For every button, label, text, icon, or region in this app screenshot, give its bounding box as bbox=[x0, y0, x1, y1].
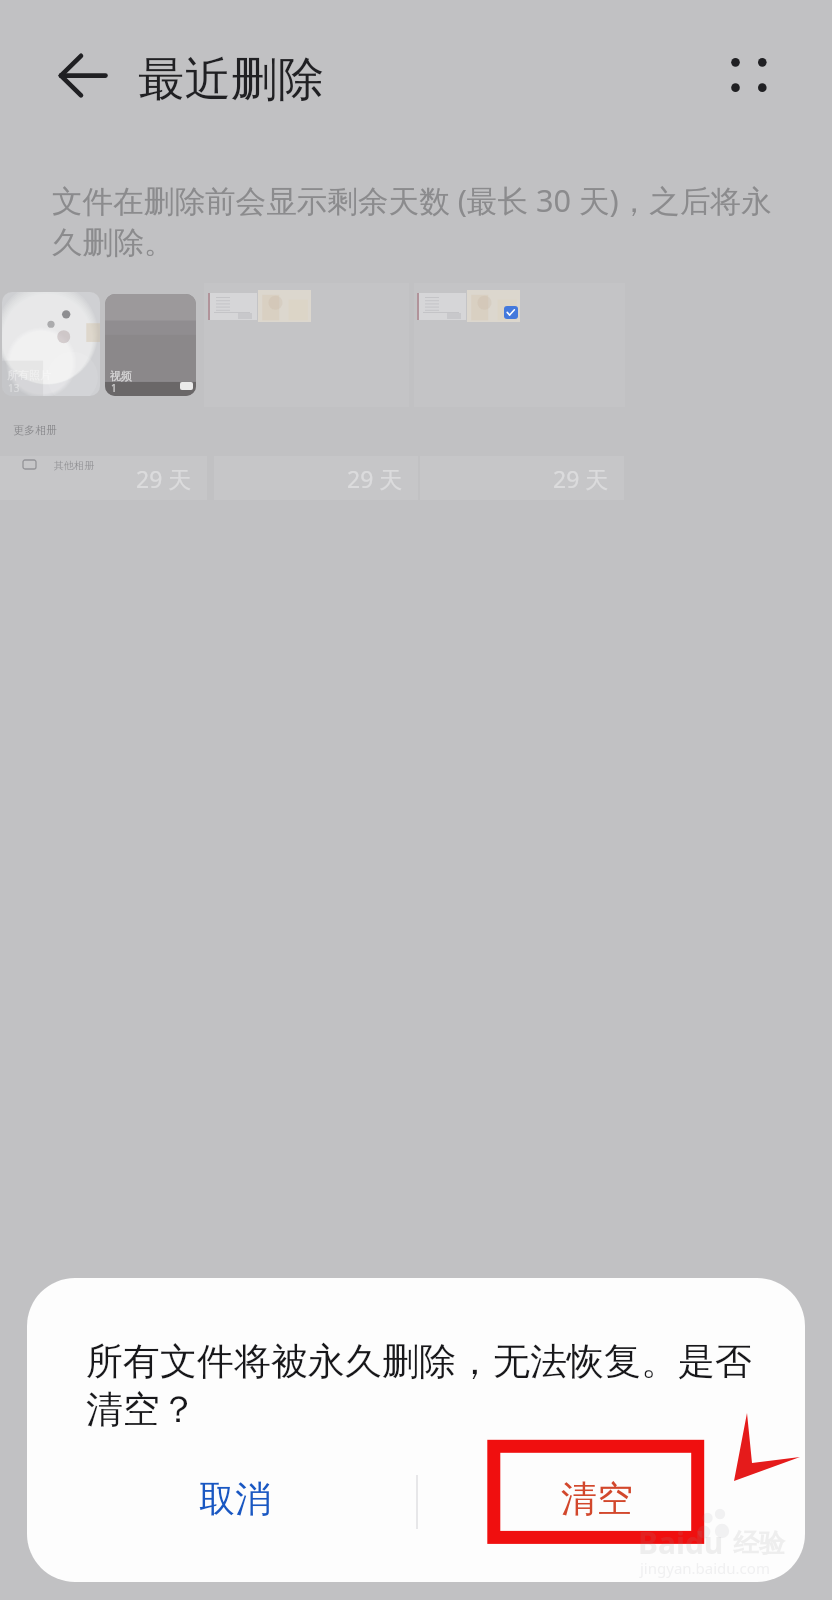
staticText: 1 bbox=[111, 381, 117, 395]
staticText: 清空 bbox=[561, 1476, 633, 1521]
button[interactable]: 清空 bbox=[506, 1440, 688, 1556]
button[interactable]: More options bbox=[705, 31, 793, 119]
button[interactable]: 取消 bbox=[144, 1440, 326, 1556]
staticText: 其他相册 bbox=[54, 459, 94, 472]
staticText: 取消 bbox=[199, 1476, 271, 1521]
staticText: 所有照片 bbox=[7, 368, 51, 382]
staticText: 更多相册 bbox=[13, 423, 57, 437]
staticText: 29 天 bbox=[347, 463, 403, 494]
staticText: Baidu bbox=[638, 1522, 724, 1563]
button[interactable]: Back bbox=[36, 31, 126, 121]
staticText: 29 天 bbox=[553, 463, 609, 494]
staticText: 经验 bbox=[733, 1527, 785, 1560]
staticText: 文件在删除前会显示剩余天数 (最长 30 天)，之后将永久删除。 bbox=[52, 179, 787, 262]
staticText: 最近删除 bbox=[138, 50, 324, 109]
staticText: 13 bbox=[8, 381, 20, 395]
staticText: 29 天 bbox=[136, 463, 192, 494]
staticText: 所有文件将被永久删除，无法恢复。是否清空？ bbox=[86, 1338, 766, 1433]
staticText: jingyan.baidu.com bbox=[640, 1558, 770, 1578]
staticText: 视频 bbox=[110, 369, 132, 383]
